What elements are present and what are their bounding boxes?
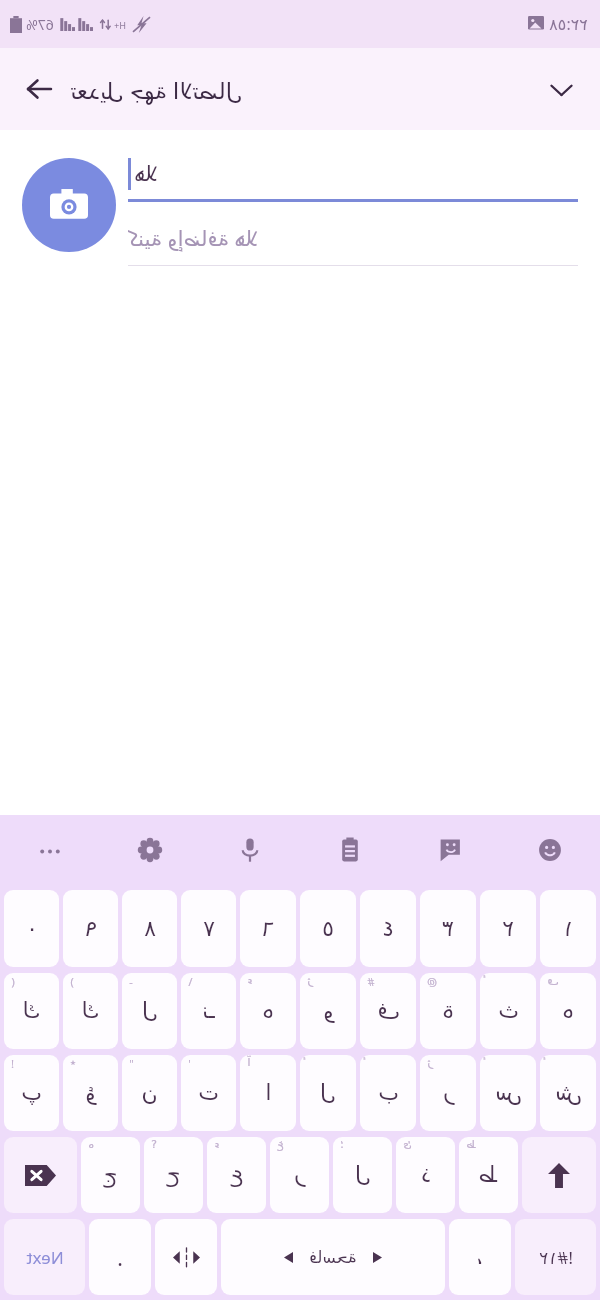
staticText: " xyxy=(129,1056,134,1071)
staticText: 67% xyxy=(26,15,54,34)
staticText: ، xyxy=(476,1244,484,1270)
staticText: ة xyxy=(442,998,454,1024)
button[interactable]: Change photo xyxy=(22,158,116,252)
button[interactable]: Next xyxy=(4,1219,85,1295)
button[interactable]: . xyxy=(89,1219,151,1295)
button[interactable]: نـ xyxy=(181,973,236,1049)
button[interactable]: More options xyxy=(0,815,100,885)
staticText: ث xyxy=(498,998,519,1024)
button[interactable]: ذ xyxy=(396,1137,455,1213)
button[interactable]: ، xyxy=(449,1219,511,1295)
staticText: ا xyxy=(265,1080,272,1106)
button[interactable]: ه xyxy=(540,973,596,1049)
staticText: ل xyxy=(355,1162,371,1188)
button[interactable]: !#١٢ xyxy=(515,1219,596,1295)
staticText: ( xyxy=(11,974,15,989)
button[interactable]: ٣ xyxy=(420,890,476,967)
staticText: ئ xyxy=(403,1138,412,1151)
button[interactable]: ٦ xyxy=(240,890,296,967)
button[interactable]: ٧ xyxy=(181,890,236,967)
button[interactable]: ٩ xyxy=(63,890,118,967)
button[interactable]: Stickers xyxy=(400,815,500,885)
staticText: ج xyxy=(103,1162,118,1188)
staticText: ل xyxy=(320,1080,336,1106)
button[interactable]: ل xyxy=(122,973,177,1049)
button[interactable]: ع xyxy=(207,1137,266,1213)
button[interactable]: Shift xyxy=(522,1137,596,1213)
staticText: ظ xyxy=(466,1138,477,1151)
staticText: ٧ xyxy=(203,916,215,942)
staticText: ٠ xyxy=(26,916,38,942)
staticText: ژ xyxy=(307,974,313,987)
button[interactable]: ه xyxy=(240,973,296,1049)
button[interactable]: ٠ xyxy=(4,890,59,967)
button[interactable]: هلا xyxy=(128,146,578,202)
staticText: نـ xyxy=(202,998,215,1024)
staticText: ب xyxy=(378,1080,399,1106)
button[interactable]: ل xyxy=(300,1055,356,1131)
button[interactable]: ك xyxy=(4,973,59,1049)
button[interactable]: ر xyxy=(420,1055,476,1131)
staticText: ٦ xyxy=(262,916,274,942)
button[interactable]: Voice input xyxy=(200,815,300,885)
button[interactable]: س xyxy=(480,1055,536,1131)
button[interactable]: ؤ xyxy=(63,1055,118,1131)
button[interactable]: ٨ xyxy=(122,890,177,967)
button[interactable]: ج xyxy=(81,1137,140,1213)
staticText: ٢٢:٥٨ xyxy=(549,13,588,35)
button[interactable]: ١ xyxy=(540,890,596,967)
staticText: ٤ xyxy=(382,916,394,942)
button[interactable]: ت xyxy=(181,1055,236,1131)
staticText: ' xyxy=(188,1056,191,1071)
button[interactable]: Emoji xyxy=(500,815,600,885)
button[interactable]: Backspace xyxy=(4,1137,77,1213)
staticText: ذ xyxy=(421,1162,431,1188)
button[interactable]: ا xyxy=(240,1055,296,1131)
button[interactable]: Space xyxy=(221,1219,445,1295)
button[interactable]: Move cursor xyxy=(155,1219,217,1295)
staticText: ء xyxy=(214,1138,220,1151)
button[interactable]: ر xyxy=(270,1137,329,1213)
staticText: ژ xyxy=(427,1056,433,1069)
button[interactable]: ن xyxy=(122,1055,177,1131)
staticText: ؤ xyxy=(85,1080,96,1106)
button[interactable]: ب xyxy=(360,1055,416,1131)
staticText: ! xyxy=(11,1056,14,1071)
button[interactable]: ة xyxy=(420,973,476,1049)
staticText: ت xyxy=(198,1080,219,1106)
button[interactable]: ٢ xyxy=(480,890,536,967)
button[interactable]: Expand xyxy=(536,64,586,114)
button[interactable]: و xyxy=(300,973,356,1049)
staticText: ل xyxy=(142,998,158,1024)
button[interactable]: ل xyxy=(333,1137,392,1213)
button[interactable]: ف xyxy=(360,973,416,1049)
button[interactable]: ك xyxy=(63,973,118,1049)
button[interactable]: ٥ xyxy=(300,890,356,967)
staticText: ه xyxy=(562,998,574,1024)
staticText: ر xyxy=(443,1080,454,1106)
staticText: ٢ xyxy=(502,916,514,942)
staticText: ه xyxy=(262,998,274,1024)
button[interactable]: Clipboard xyxy=(300,815,400,885)
button[interactable]: ط xyxy=(459,1137,518,1213)
staticText: ف xyxy=(377,998,400,1024)
staticText: ح xyxy=(166,1162,181,1188)
button[interactable]: پ xyxy=(4,1055,59,1131)
staticText: ١ xyxy=(562,916,574,942)
button[interactable]: كنية وإضافة هلا xyxy=(128,210,578,266)
staticText: ) xyxy=(70,974,74,989)
button[interactable]: Back xyxy=(14,64,64,114)
button[interactable]: ح xyxy=(144,1137,203,1213)
staticText: آ xyxy=(247,1056,251,1069)
button[interactable]: ش xyxy=(540,1055,596,1131)
staticText: غ xyxy=(277,1138,284,1151)
staticText: ٭ xyxy=(70,1056,76,1069)
staticText: ء xyxy=(247,974,253,987)
staticText: H+ xyxy=(114,19,126,31)
staticText: ؛ xyxy=(340,1138,344,1151)
button[interactable]: ث xyxy=(480,973,536,1049)
button[interactable]: ٤ xyxy=(360,890,416,967)
staticText: ٨ xyxy=(144,916,156,942)
staticText: @ xyxy=(427,974,437,989)
button[interactable]: Settings xyxy=(100,815,200,885)
